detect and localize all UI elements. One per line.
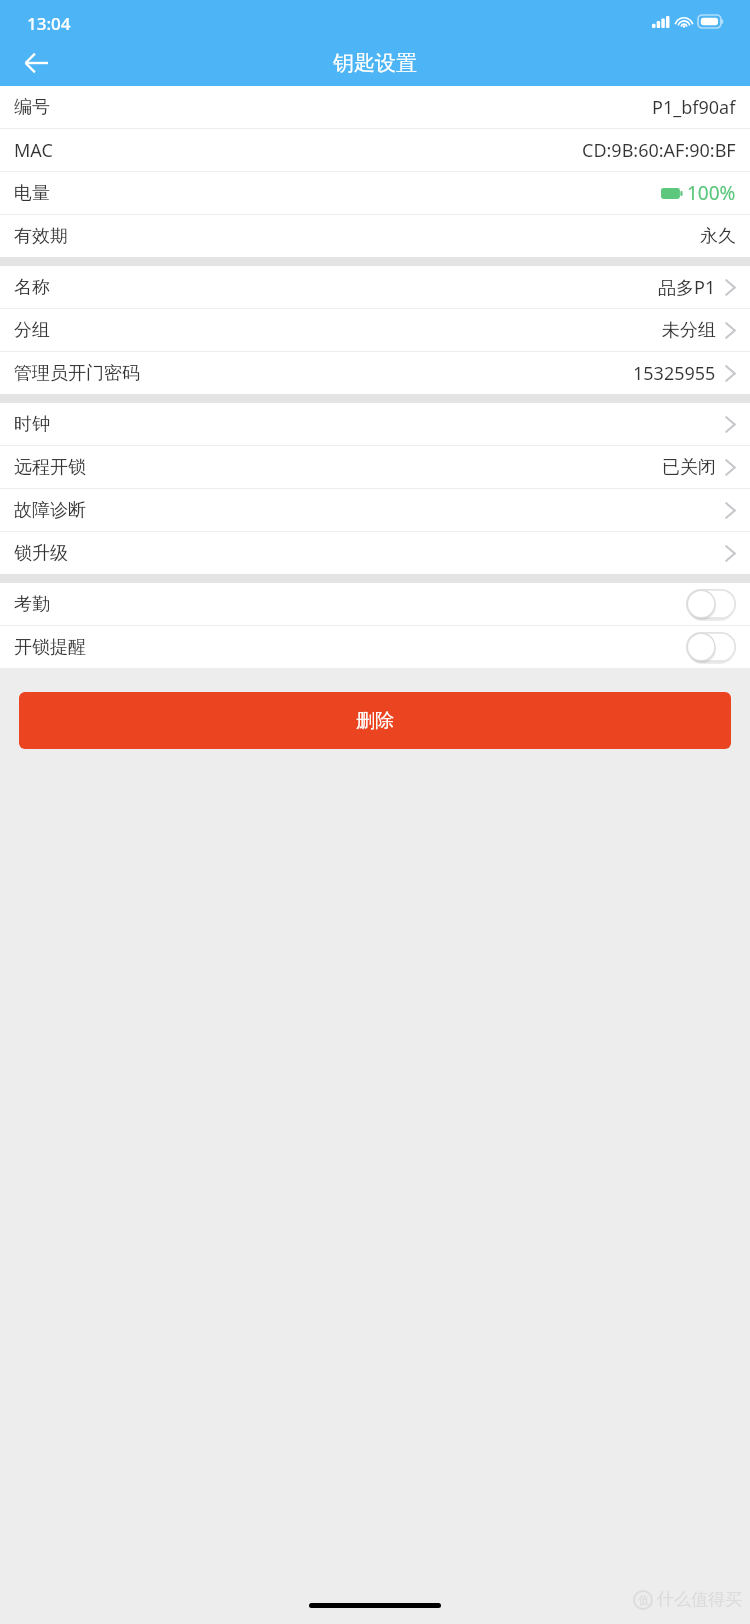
- staticText: 值: [638, 1593, 649, 1607]
- button[interactable]: 锁升级: [0, 532, 750, 574]
- staticText: 电量: [14, 182, 50, 205]
- button[interactable]: 管理员开门密码: [0, 352, 750, 394]
- button[interactable]: 分组: [0, 309, 750, 352]
- staticText: 远程开锁: [14, 456, 86, 479]
- staticText: 钥匙设置: [333, 50, 417, 76]
- staticText: CD:9B:60:AF:90:BF: [582, 138, 736, 163]
- staticText: 名称: [14, 276, 50, 299]
- staticText: 100%: [687, 180, 736, 206]
- staticText: 15325955: [633, 361, 716, 386]
- button[interactable]: Back: [12, 40, 60, 86]
- staticText: 开锁提醒: [14, 636, 86, 659]
- staticText: 管理员开门密码: [14, 362, 140, 385]
- staticText: 有效期: [14, 225, 68, 248]
- staticText: MAC: [14, 138, 53, 163]
- staticText: 考勤: [14, 593, 50, 616]
- staticText: 时钟: [14, 413, 50, 436]
- staticText: 编号: [14, 96, 50, 119]
- button[interactable]: 远程开锁: [0, 446, 750, 489]
- staticText: 13:04: [27, 12, 71, 35]
- staticText: 分组: [14, 319, 50, 342]
- staticText: 删除: [356, 709, 394, 733]
- button[interactable]: 考勤: [686, 589, 736, 619]
- button[interactable]: 时钟: [0, 403, 750, 446]
- button[interactable]: 故障诊断: [0, 489, 750, 532]
- staticText: P1_bf90af: [652, 95, 736, 120]
- staticText: 品多P1: [658, 275, 716, 300]
- staticText: 未分组: [662, 319, 716, 342]
- staticText: 故障诊断: [14, 499, 86, 522]
- button[interactable]: 名称: [0, 266, 750, 309]
- staticText: 永久: [700, 225, 736, 248]
- staticText: 锁升级: [14, 542, 68, 565]
- button[interactable]: 删除: [19, 692, 731, 749]
- button[interactable]: 开锁提醒: [686, 632, 736, 662]
- staticText: 已关闭: [662, 456, 716, 479]
- staticText: 什么值得买: [657, 1589, 742, 1610]
